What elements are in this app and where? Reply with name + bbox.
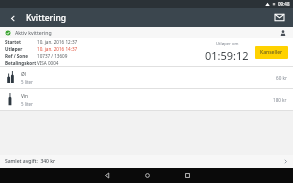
- button[interactable]: Recents: [172, 168, 202, 183]
- staticText: Kanseller: [260, 49, 283, 56]
- staticText: Utløper: [5, 46, 23, 52]
- staticText: Betalingskort: [5, 60, 37, 66]
- staticText: 5 liter: [21, 101, 33, 107]
- staticText: 01:59:12: [205, 48, 249, 63]
- button[interactable]: Kanseller: [255, 46, 288, 59]
- staticText: 10737 / 13609: [37, 53, 68, 59]
- button[interactable]: Øl: [0, 67, 293, 88]
- staticText: Utløper om: [216, 41, 239, 47]
- button[interactable]: Aktiv kvittering: [0, 27, 293, 38]
- button[interactable]: Samlet avgift: 340 kr: [0, 155, 293, 168]
- button[interactable]: Account: [278, 28, 288, 38]
- button[interactable]: Home: [132, 168, 162, 183]
- staticText: Startet: [5, 39, 22, 45]
- button[interactable]: Back: [92, 168, 122, 183]
- button[interactable]: Back: [6, 11, 20, 25]
- staticText: Samlet avgift: 340 kr: [5, 158, 56, 165]
- staticText: Ref / Sone: [5, 53, 28, 59]
- staticText: 5 liter: [21, 79, 33, 85]
- staticText: Vin: [21, 93, 29, 100]
- staticText: Øl: [21, 71, 26, 78]
- staticText: Kvittering: [26, 12, 67, 24]
- staticText: 180 kr: [273, 97, 287, 103]
- staticText: 09:48: [278, 1, 290, 7]
- staticText: VISA 0004: [37, 60, 59, 66]
- button[interactable]: Vin: [0, 89, 293, 110]
- button[interactable]: Send receipt: [272, 10, 287, 25]
- staticText: Aktiv kvittering: [15, 29, 52, 36]
- staticText: 60 kr: [276, 75, 287, 81]
- staticText: 10. jan. 2016 12:37: [37, 39, 78, 45]
- staticText: 10. jan. 2016 14:37: [37, 46, 78, 52]
